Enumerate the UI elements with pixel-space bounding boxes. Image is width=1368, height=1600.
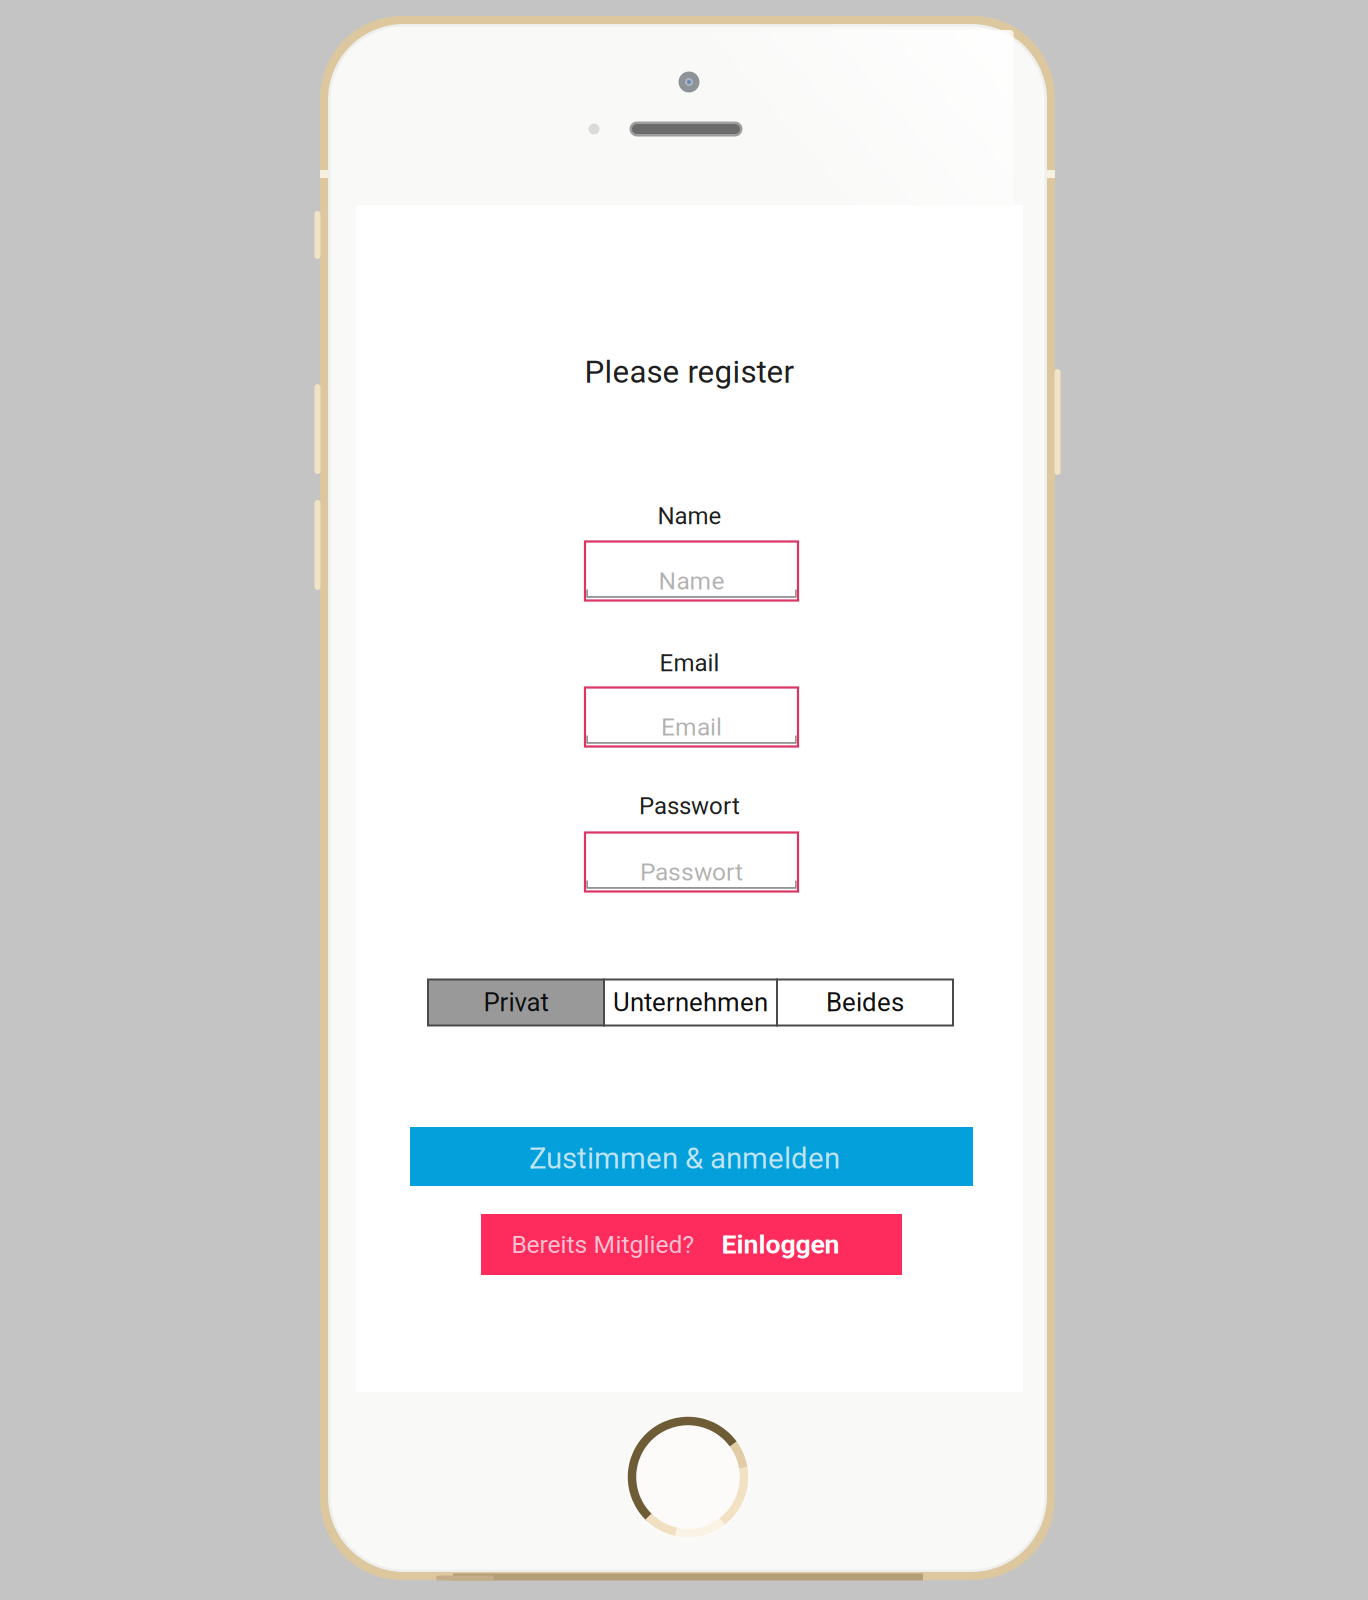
staticText: Email bbox=[661, 713, 722, 741]
button[interactable]: Unternehmen bbox=[604, 979, 777, 1025]
staticText: Email bbox=[659, 649, 719, 677]
staticText: Please register bbox=[584, 354, 794, 390]
button[interactable]: Privat bbox=[428, 979, 604, 1025]
staticText: Passwort bbox=[640, 858, 743, 886]
staticText: Zustimmen & anmelden bbox=[529, 1141, 840, 1176]
staticText: Bereits Mitglied? bbox=[511, 1230, 694, 1259]
staticText: Privat bbox=[483, 987, 548, 1018]
button[interactable]: Email bbox=[585, 687, 798, 746]
button[interactable]: Zustimmen & anmelden bbox=[410, 1127, 973, 1186]
staticText: Unternehmen bbox=[613, 987, 768, 1018]
staticText: Passwort bbox=[639, 792, 740, 820]
button[interactable]: Passwort bbox=[585, 832, 798, 891]
staticText: Einloggen bbox=[721, 1229, 839, 1260]
button[interactable]: Bereits Mitglied? bbox=[481, 1214, 902, 1275]
button[interactable]: Beides bbox=[777, 979, 953, 1025]
button[interactable]: Name bbox=[585, 541, 798, 600]
staticText: Beides bbox=[826, 987, 904, 1018]
staticText: Name bbox=[657, 502, 721, 530]
staticText: Name bbox=[658, 567, 724, 595]
